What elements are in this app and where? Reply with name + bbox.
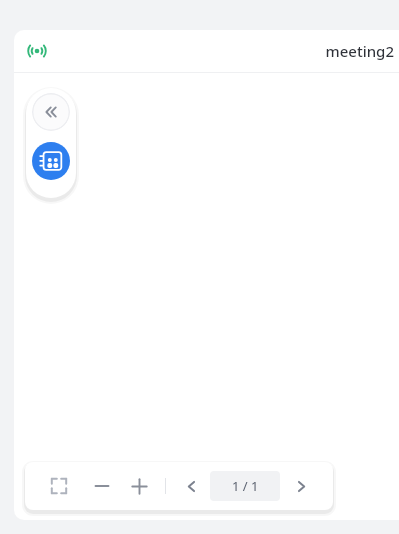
- staticText: 1 / 1: [232, 477, 259, 495]
- button[interactable]: 1 / 1: [210, 471, 280, 501]
- staticText: meeting2: [325, 41, 394, 61]
- button[interactable]: Next page: [286, 471, 316, 501]
- button[interactable]: Previous page: [176, 471, 206, 501]
- button[interactable]: Zoom out: [86, 470, 118, 502]
- button[interactable]: Participants whiteboard: [32, 142, 70, 180]
- button[interactable]: Zoom in: [123, 470, 155, 502]
- button[interactable]: Live broadcast status: [22, 36, 52, 66]
- button[interactable]: Collapse toolbar: [32, 93, 70, 131]
- button[interactable]: Fit to screen: [43, 470, 75, 502]
